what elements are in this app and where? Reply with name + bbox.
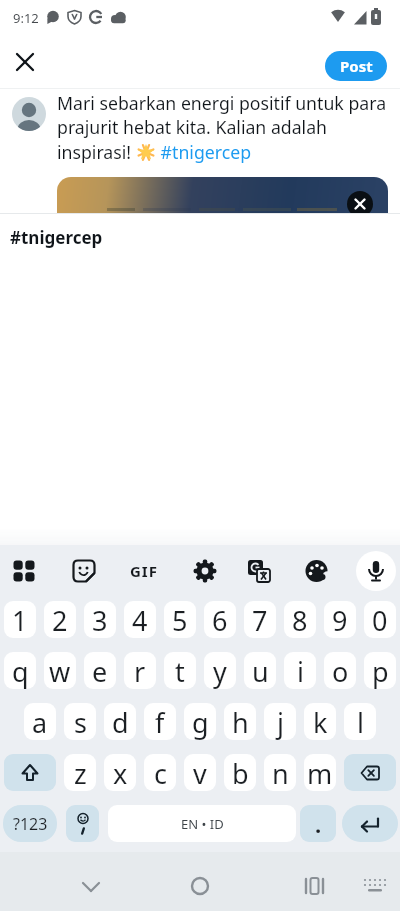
button[interactable]: r xyxy=(124,652,156,689)
staticText: 6 xyxy=(212,602,228,638)
button[interactable]: 7 xyxy=(244,601,276,638)
staticText: p xyxy=(372,653,389,689)
button[interactable]: 9 xyxy=(324,601,356,638)
staticText: 1 xyxy=(12,602,28,638)
staticText: f xyxy=(155,704,165,740)
staticText: . xyxy=(315,809,322,839)
button[interactable]: y xyxy=(204,652,236,689)
staticText: #tnigercep xyxy=(10,226,103,249)
staticText: i xyxy=(297,653,304,689)
button[interactable] xyxy=(360,872,390,902)
staticText: 2 xyxy=(52,602,68,638)
button[interactable]: 0 xyxy=(364,601,396,638)
button[interactable] xyxy=(4,754,56,791)
button[interactable]: u xyxy=(244,652,276,689)
button[interactable]: f xyxy=(144,703,176,740)
staticText: t xyxy=(175,653,185,689)
button[interactable] xyxy=(70,557,98,585)
button[interactable]: Post xyxy=(325,51,387,81)
button[interactable] xyxy=(344,754,396,791)
button[interactable]: w xyxy=(44,652,76,689)
button[interactable] xyxy=(10,557,38,585)
button[interactable]: #tnigercep xyxy=(0,214,400,258)
button[interactable]: e xyxy=(84,652,116,689)
button[interactable]: q xyxy=(4,652,36,689)
staticText: 3 xyxy=(92,602,108,638)
button[interactable] xyxy=(76,872,106,902)
button[interactable]: EN • ID xyxy=(108,805,296,842)
staticText: n xyxy=(272,755,289,791)
button[interactable]: l xyxy=(344,703,376,740)
staticText: g xyxy=(192,704,209,740)
button[interactable] xyxy=(191,557,219,585)
button[interactable]: GIF xyxy=(127,557,161,585)
staticText: prajurit hebat kita. Kalian adalah xyxy=(57,115,328,139)
staticText: x xyxy=(113,755,128,791)
button[interactable]: 3 xyxy=(84,601,116,638)
button[interactable]: 5 xyxy=(164,601,196,638)
staticText: h xyxy=(232,704,249,740)
button[interactable]: j xyxy=(264,703,296,740)
button[interactable]: 4 xyxy=(124,601,156,638)
staticText: 0 xyxy=(372,602,388,638)
button[interactable]: m xyxy=(304,754,336,791)
staticText: 9:12 xyxy=(13,9,39,27)
button[interactable]: x xyxy=(104,754,136,791)
staticText: e xyxy=(92,653,108,689)
button[interactable]: g xyxy=(184,703,216,740)
staticText: z xyxy=(74,755,87,791)
staticText: #tnigercep xyxy=(156,140,252,164)
button[interactable] xyxy=(347,191,373,213)
staticText: l xyxy=(357,704,364,740)
staticText: 8 xyxy=(292,602,308,638)
staticText: d xyxy=(112,704,129,740)
button[interactable]: i xyxy=(284,652,316,689)
button[interactable]: z xyxy=(64,754,96,791)
button[interactable] xyxy=(245,557,273,585)
button[interactable]: k xyxy=(304,703,336,740)
staticText: c xyxy=(154,755,167,791)
button[interactable]: 1 xyxy=(4,601,36,638)
staticText: v xyxy=(193,755,207,791)
button[interactable]: . xyxy=(300,805,336,842)
staticText: q xyxy=(12,653,29,689)
button[interactable]: o xyxy=(324,652,356,689)
button[interactable] xyxy=(299,872,329,902)
staticText: ?123 xyxy=(13,813,48,835)
staticText: 4 xyxy=(132,602,148,638)
button[interactable]: b xyxy=(224,754,256,791)
staticText: GIF xyxy=(130,561,158,581)
button[interactable] xyxy=(66,805,99,842)
staticText: 9 xyxy=(332,602,348,638)
staticText: a xyxy=(32,704,48,740)
button[interactable]: t xyxy=(164,652,196,689)
button[interactable]: n xyxy=(264,754,296,791)
button[interactable] xyxy=(12,97,46,131)
button[interactable]: ?123 xyxy=(3,805,57,842)
button[interactable]: s xyxy=(64,703,96,740)
staticText: b xyxy=(232,755,249,791)
button[interactable]: d xyxy=(104,703,136,740)
button[interactable] xyxy=(356,551,396,591)
button[interactable]: a xyxy=(24,703,56,740)
staticText: o xyxy=(332,653,349,689)
button[interactable]: c xyxy=(144,754,176,791)
staticText: Post xyxy=(340,56,373,76)
staticText: m xyxy=(307,755,333,791)
button[interactable] xyxy=(11,48,39,76)
staticText: EN • ID xyxy=(181,815,224,833)
button[interactable]: 2 xyxy=(44,601,76,638)
staticText: 5 xyxy=(172,602,188,638)
staticText: u xyxy=(252,653,269,689)
button[interactable] xyxy=(303,557,331,585)
button[interactable] xyxy=(342,805,398,842)
button[interactable] xyxy=(185,872,215,902)
button[interactable]: 8 xyxy=(284,601,316,638)
button[interactable]: p xyxy=(364,652,396,689)
button[interactable]: 6 xyxy=(204,601,236,638)
staticText: Mari sebarkan energi positif untuk para xyxy=(57,91,387,115)
button[interactable]: h xyxy=(224,703,256,740)
staticText: w xyxy=(49,653,71,689)
button[interactable]: v xyxy=(184,754,216,791)
staticText: k xyxy=(313,704,328,740)
